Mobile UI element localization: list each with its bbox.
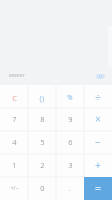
staticText: () <box>39 93 45 103</box>
button[interactable]: ÷ <box>84 85 112 108</box>
staticText: × <box>95 112 101 126</box>
button[interactable]: 5 <box>28 131 56 154</box>
button[interactable]: 3 <box>56 154 84 177</box>
staticText: 4 <box>12 137 17 147</box>
staticText: = <box>95 181 101 195</box>
button[interactable]: 9 <box>56 108 84 131</box>
button[interactable]: 8 <box>28 108 56 131</box>
staticText: 2 <box>40 160 45 170</box>
button[interactable]: History <box>96 74 105 79</box>
button[interactable]: × <box>84 108 112 131</box>
staticText: 9 <box>68 114 73 124</box>
button[interactable]: 0 <box>28 177 56 200</box>
staticText: 5 <box>40 137 45 147</box>
staticText: 7 <box>12 114 17 124</box>
staticText: 8 <box>40 114 45 124</box>
staticText: 3 <box>68 160 73 170</box>
button[interactable]: − <box>84 131 112 154</box>
button[interactable]: = <box>84 177 112 200</box>
staticText: ÷ <box>95 91 101 105</box>
button[interactable]: 4 <box>0 131 28 154</box>
staticText: − <box>95 135 101 149</box>
staticText: C <box>12 93 17 103</box>
staticText: MWERT <box>9 73 26 79</box>
staticText: ( ) <box>99 74 102 79</box>
staticText: 6 <box>68 137 73 147</box>
button[interactable]: +/− <box>0 177 28 200</box>
staticText: + <box>95 158 101 172</box>
button[interactable]: () <box>28 85 56 108</box>
button[interactable]: 1 <box>0 154 28 177</box>
staticText: 1 <box>12 160 17 170</box>
staticText: +/− <box>10 184 19 191</box>
staticText: . <box>69 183 71 193</box>
button[interactable]: 7 <box>0 108 28 131</box>
button[interactable]: 6 <box>56 131 84 154</box>
staticText: % <box>67 93 73 102</box>
button[interactable]: C <box>0 85 28 108</box>
button[interactable]: + <box>84 154 112 177</box>
staticText: 0 <box>40 183 45 193</box>
button[interactable]: % <box>56 85 84 108</box>
button[interactable]: 2 <box>28 154 56 177</box>
